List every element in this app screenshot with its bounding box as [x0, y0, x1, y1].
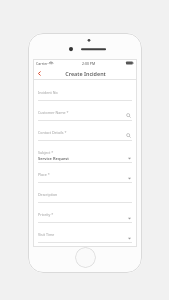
- button[interactable]: Description: [38, 192, 132, 212]
- button[interactable]: Visit Time: [38, 232, 132, 247]
- button[interactable]: Search Contact Details *: [125, 132, 132, 139]
- button[interactable]: Open Place * options: [126, 175, 132, 181]
- button[interactable]: Open Priority * options: [126, 215, 132, 221]
- staticText: Priority *: [38, 212, 54, 217]
- staticText: Carrier: [36, 61, 48, 66]
- staticText: Create Incident: [65, 70, 106, 77]
- staticText: Service Request: [38, 156, 69, 161]
- button[interactable]: Place *: [38, 172, 132, 192]
- staticText: Contact Details *: [38, 130, 67, 135]
- staticText: Customer Name *: [38, 110, 69, 115]
- staticText: Visit Time: [38, 232, 55, 237]
- button[interactable]: Subject *: [38, 150, 132, 172]
- staticText: Incident No: [38, 90, 58, 95]
- staticText: Description: [38, 192, 58, 197]
- button[interactable]: Incident No: [38, 90, 132, 110]
- button[interactable]: Open Visit Time options: [126, 235, 132, 241]
- button[interactable]: Contact Details *: [38, 130, 132, 150]
- button[interactable]: Search Customer Name *: [125, 112, 132, 119]
- button[interactable]: Customer Name *: [38, 110, 132, 130]
- button[interactable]: Priority *: [38, 212, 132, 232]
- staticText: Subject *: [38, 150, 54, 155]
- button[interactable]: Open Subject * options: [126, 155, 132, 161]
- button[interactable]: Home: [75, 247, 96, 268]
- staticText: Place *: [38, 172, 50, 177]
- staticText: 2:00 PM: [82, 61, 96, 66]
- button[interactable]: Back: [33, 67, 45, 79]
